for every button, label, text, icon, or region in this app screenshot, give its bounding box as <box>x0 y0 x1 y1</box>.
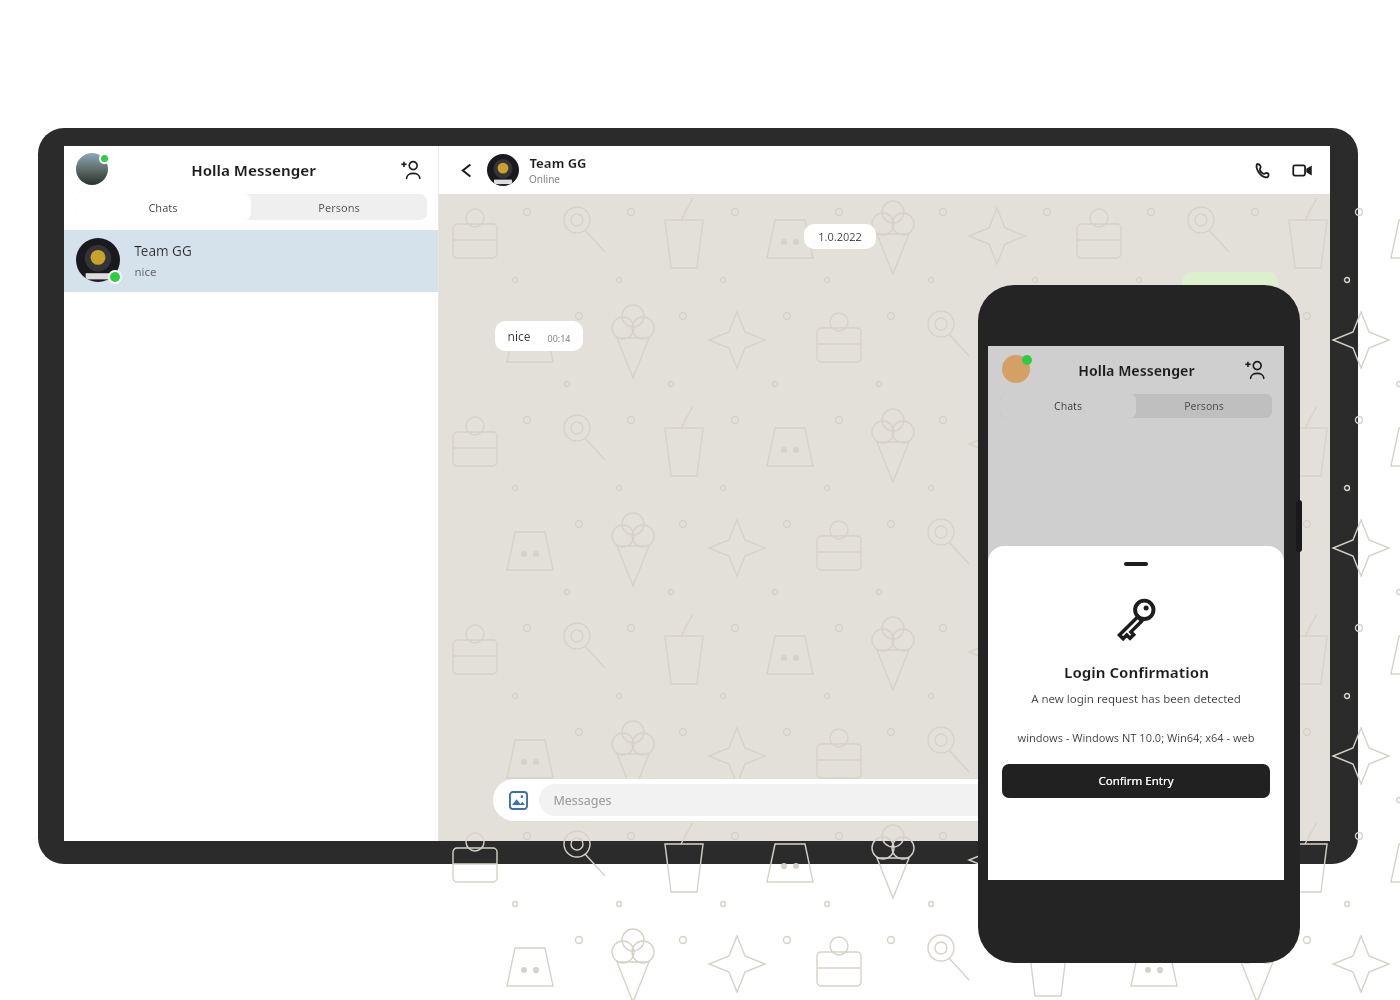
button[interactable]: Add person <box>396 155 426 185</box>
staticText: Chats <box>148 200 178 215</box>
staticText: windows - Windows NT 10.0; Win64; x64 - … <box>1017 730 1255 745</box>
staticText: 1.0.2022 <box>818 229 862 244</box>
staticText: Online <box>529 172 560 186</box>
staticText: Confirm Entry <box>1098 773 1174 789</box>
staticText: A new login request has been detected <box>1031 691 1241 707</box>
staticText: Persons <box>1184 399 1224 413</box>
button[interactable]: Confirm Entry <box>1002 764 1270 798</box>
staticText: Chats <box>1054 399 1082 413</box>
button[interactable]: Add person <box>1240 355 1270 385</box>
staticText: Holla Messenger <box>1078 361 1195 380</box>
staticText: nice <box>507 328 531 344</box>
button[interactable]: Attach image <box>503 785 533 815</box>
button[interactable]: Chats <box>75 194 251 220</box>
staticText: Persons <box>318 200 360 215</box>
button[interactable]: Persons <box>251 194 427 220</box>
staticText: Login Confirmation <box>1064 662 1209 682</box>
button[interactable]: Persons <box>1136 394 1272 418</box>
staticText: Team GG <box>134 242 192 260</box>
button[interactable]: Call <box>1248 156 1276 184</box>
staticText: Messages <box>553 792 612 809</box>
staticText: Team GG <box>529 154 587 172</box>
staticText: Holla Messenger <box>191 160 316 180</box>
staticText: nice <box>134 264 157 280</box>
button[interactable]: Chats <box>1000 394 1136 418</box>
button[interactable]: Attach image <box>493 779 1290 821</box>
button[interactable]: Video call <box>1288 156 1316 184</box>
button[interactable]: Back <box>453 157 479 183</box>
staticText: 00:14 <box>547 332 571 344</box>
button[interactable]: Team GG <box>64 230 438 292</box>
